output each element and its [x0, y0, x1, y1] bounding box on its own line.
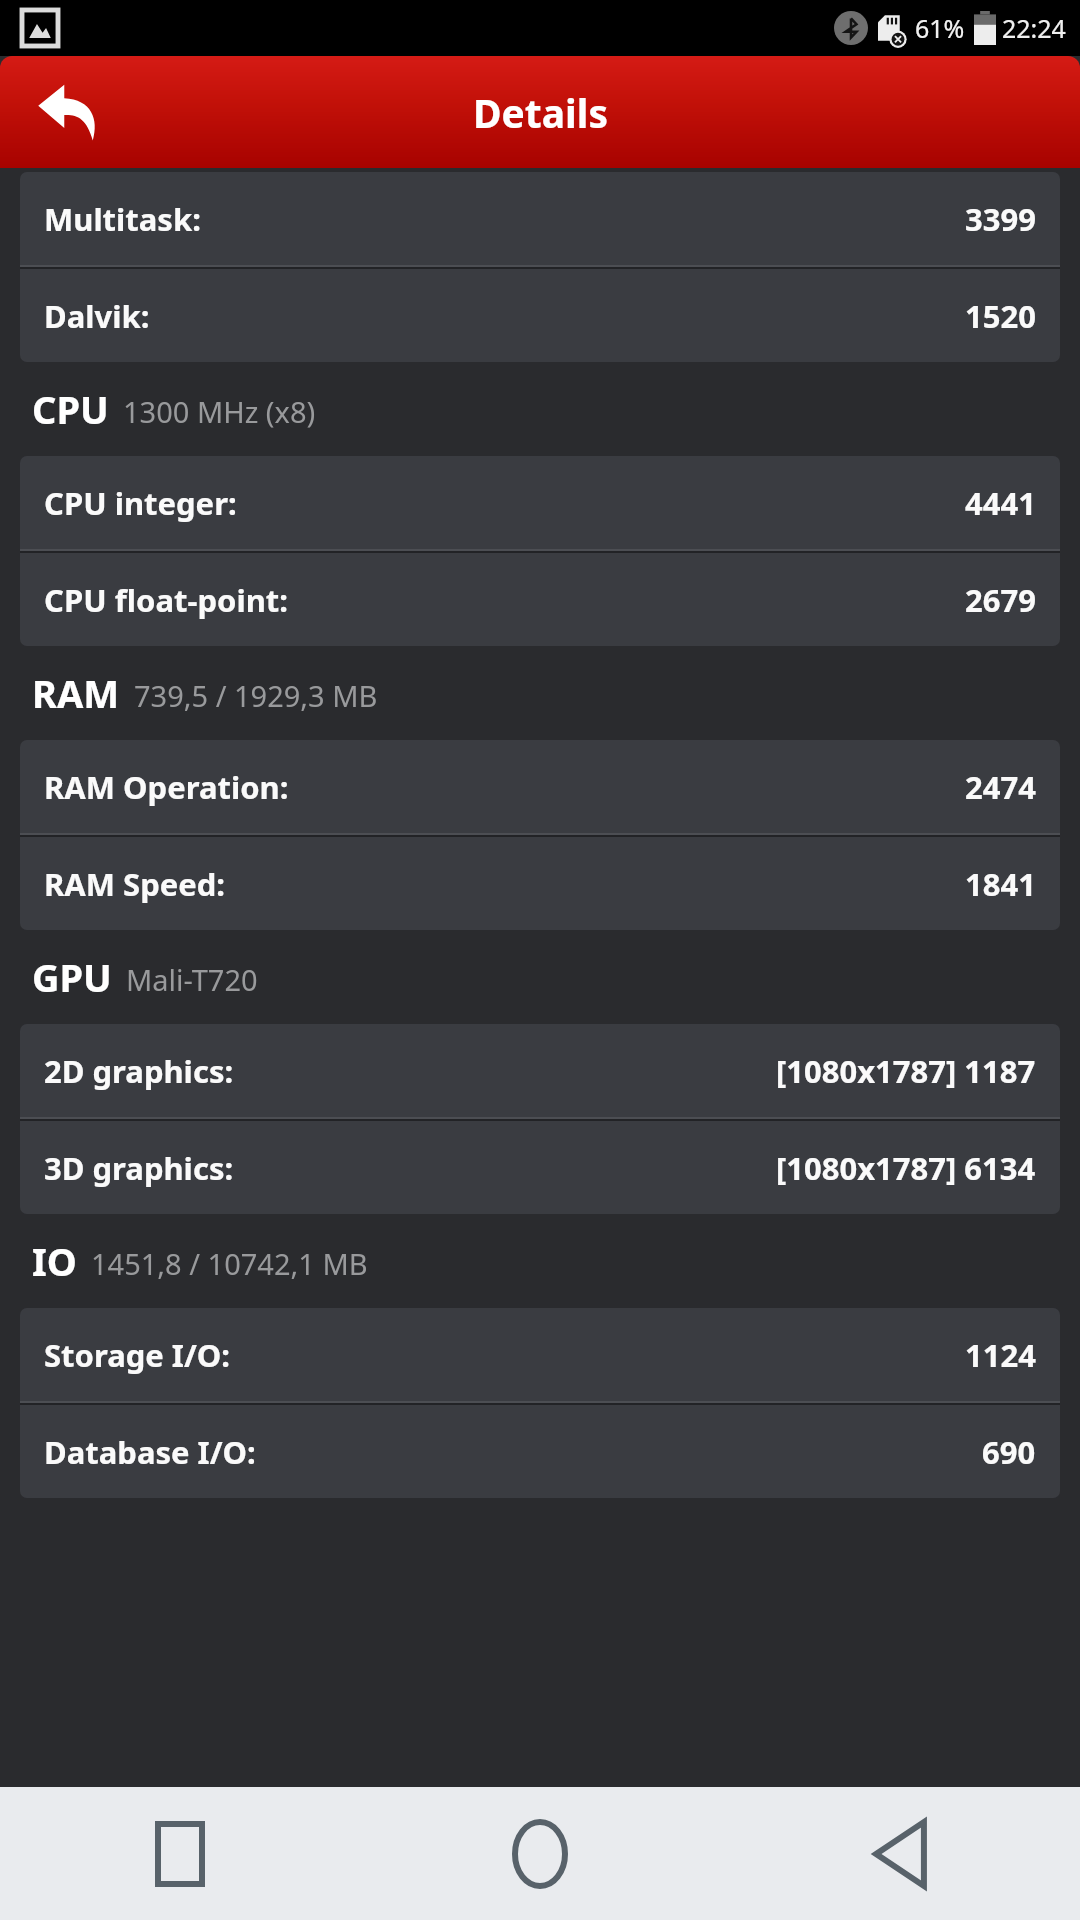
staticText: Dalvik: — [44, 295, 965, 337]
staticText: 22:24 — [1002, 11, 1066, 45]
button[interactable]: CPU integer: — [20, 456, 1060, 549]
button[interactable]: RAM Operation: — [20, 740, 1060, 833]
button[interactable]: Database I/O: — [20, 1405, 1060, 1498]
button[interactable]: RAM Speed: — [20, 837, 1060, 930]
staticText: 1841 — [965, 863, 1036, 905]
staticText: CPU — [32, 383, 109, 435]
staticText: 4441 — [965, 482, 1036, 524]
button[interactable]: Back — [720, 1787, 1080, 1920]
staticText: RAM Speed: — [44, 863, 965, 905]
button[interactable]: Multitask: — [20, 172, 1060, 265]
staticText: 1520 — [965, 295, 1036, 337]
button[interactable]: CPU float-point: — [20, 553, 1060, 646]
staticText: Storage I/O: — [44, 1334, 965, 1376]
staticText: 3D graphics: — [44, 1147, 776, 1189]
staticText: RAM Operation: — [44, 766, 965, 808]
staticText: 1451,8 / 10742,1 MB — [91, 1244, 368, 1283]
staticText: Database I/O: — [44, 1431, 982, 1473]
staticText: 2474 — [965, 766, 1036, 808]
button[interactable]: Back — [26, 70, 110, 154]
staticText: CPU float-point: — [44, 579, 965, 621]
staticText: 1300 MHz (x8) — [123, 392, 316, 431]
staticText: [1080x1787] 6134 — [776, 1147, 1036, 1189]
button[interactable]: Storage I/O: — [20, 1308, 1060, 1401]
staticText: 3399 — [965, 198, 1036, 240]
button[interactable]: Home — [360, 1787, 720, 1920]
staticText: Multitask: — [44, 198, 965, 240]
staticText: 739,5 / 1929,3 MB — [134, 676, 378, 715]
staticText: IO — [32, 1235, 77, 1287]
staticText: 690 — [982, 1431, 1036, 1473]
staticText: 2D graphics: — [44, 1050, 776, 1092]
staticText: Mali-T720 — [126, 960, 258, 999]
button[interactable]: 3D graphics: — [20, 1121, 1060, 1214]
staticText: Details — [473, 86, 608, 139]
staticText: 1124 — [965, 1334, 1036, 1376]
staticText: GPU — [32, 951, 112, 1003]
staticText: RAM — [32, 667, 120, 719]
staticText: [1080x1787] 1187 — [776, 1050, 1036, 1092]
button[interactable]: Dalvik: — [20, 269, 1060, 362]
staticText: 61% — [915, 11, 965, 45]
button[interactable]: 2D graphics: — [20, 1024, 1060, 1117]
staticText: 2679 — [965, 579, 1036, 621]
button[interactable]: Recent apps — [0, 1787, 360, 1920]
staticText: CPU integer: — [44, 482, 965, 524]
